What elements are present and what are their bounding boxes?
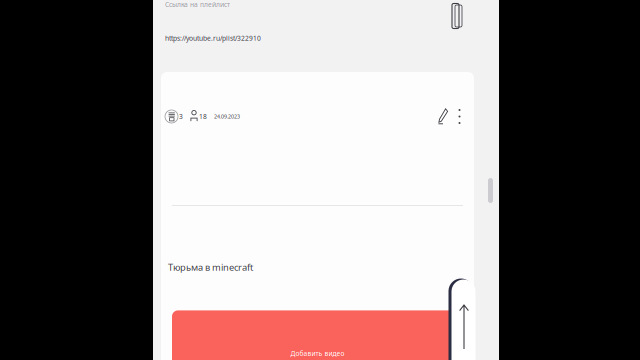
staticText: Тюрьма в minecraft [168, 261, 253, 273]
staticText: https://youtube.ru/plist/322910 [165, 34, 261, 43]
staticText: Добавить видео [290, 349, 344, 358]
staticText: 24.09.2023 [214, 113, 240, 120]
button[interactable]: Edit [435, 105, 452, 128]
button[interactable]: Scroll to top [447, 278, 477, 360]
button[interactable]: Copy link [448, 0, 466, 30]
staticText: Ссылка на плейлист [165, 0, 230, 9]
button[interactable]: More options [452, 107, 467, 126]
button[interactable]: Добавить видео [172, 310, 463, 360]
staticText: 18 [199, 112, 207, 121]
staticText: 3 [179, 112, 183, 121]
